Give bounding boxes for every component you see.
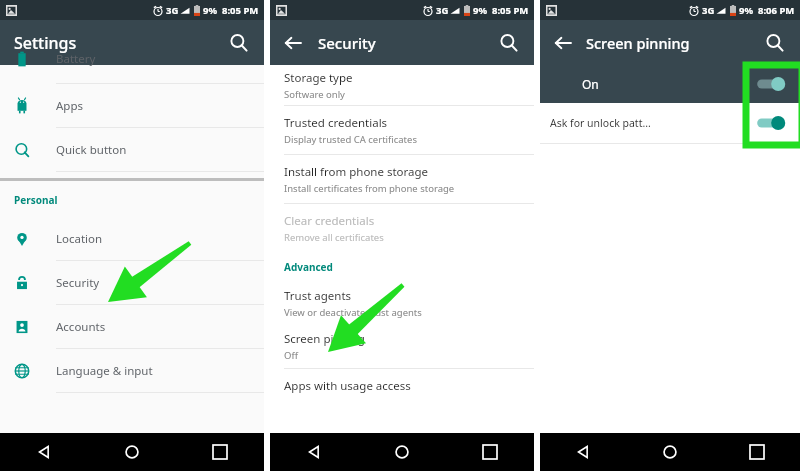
button[interactable]: Storage type xyxy=(270,65,534,106)
staticText: View or deactivate trust agents xyxy=(284,306,422,319)
staticText: Security xyxy=(56,275,100,291)
button[interactable]: Search xyxy=(494,28,524,58)
staticText: Advanced xyxy=(284,260,333,274)
staticText: 8:05 PM xyxy=(492,4,529,17)
button[interactable]: Language & input xyxy=(0,349,264,393)
staticText: Security xyxy=(318,33,376,53)
button[interactable]: Accounts xyxy=(0,305,264,349)
staticText: Location xyxy=(56,231,103,247)
button[interactable]: Search xyxy=(224,28,254,58)
staticText: 3G xyxy=(702,4,715,17)
staticText: Trust agents xyxy=(284,288,352,304)
button[interactable]: Clear credentials xyxy=(270,204,534,252)
staticText: Settings xyxy=(14,32,77,54)
staticText: On xyxy=(582,76,599,92)
staticText: Battery xyxy=(56,51,96,67)
staticText: Apps with usage access xyxy=(284,378,411,394)
staticText: Trusted credentials xyxy=(284,115,388,131)
staticText: Remove all certificates xyxy=(284,231,384,244)
staticText: Off xyxy=(284,349,298,362)
staticText: 3G xyxy=(166,4,179,17)
button[interactable]: Location xyxy=(0,217,264,261)
staticText: 9% xyxy=(203,4,218,17)
staticText: Apps xyxy=(56,98,84,114)
staticText: Clear credentials xyxy=(284,213,375,229)
button[interactable]: Screen pinning xyxy=(270,324,534,369)
button[interactable]: Home xyxy=(88,433,176,471)
button[interactable]: On xyxy=(582,65,786,103)
staticText: Install certificates from phone storage xyxy=(284,182,455,195)
staticText: 8:05 PM xyxy=(222,4,259,17)
button[interactable]: Back xyxy=(0,433,88,471)
button[interactable]: Recent apps xyxy=(176,433,264,471)
button[interactable]: Back xyxy=(270,433,358,471)
staticText: 9% xyxy=(739,4,754,17)
staticText: 3G xyxy=(436,4,449,17)
button[interactable]: Ask for unlock pattern before unpin.. xyxy=(550,103,786,143)
staticText: Personal xyxy=(14,193,58,207)
button[interactable]: Recent apps xyxy=(713,433,800,471)
button[interactable]: Apps xyxy=(0,84,264,128)
button[interactable] xyxy=(756,115,786,131)
button[interactable]: Quick button xyxy=(0,128,264,172)
button[interactable]: Navigate up xyxy=(548,28,578,58)
staticText: Quick button xyxy=(56,142,127,158)
staticText: Install from phone storage xyxy=(284,164,429,180)
button[interactable]: Navigate up xyxy=(278,28,308,58)
staticText: Ask for unlock pattern before unpin.. xyxy=(550,116,653,130)
button[interactable]: Apps with usage access xyxy=(270,369,534,403)
button[interactable]: Security xyxy=(0,261,264,305)
button[interactable] xyxy=(756,76,786,92)
button[interactable]: Back xyxy=(540,433,626,471)
button[interactable]: Trust agents xyxy=(270,282,534,324)
button[interactable]: Recent apps xyxy=(446,433,534,471)
staticText: 8:06 PM xyxy=(758,4,795,17)
button[interactable]: Home xyxy=(358,433,446,471)
staticText: Accounts xyxy=(56,319,106,335)
button[interactable]: Install from phone storage xyxy=(270,155,534,204)
button[interactable]: Home xyxy=(626,433,713,471)
staticText: Screen pinning xyxy=(284,331,365,347)
staticText: Screen pinning xyxy=(586,33,690,53)
staticText: 9% xyxy=(473,4,488,17)
staticText: Language & input xyxy=(56,363,153,379)
staticText: Software only xyxy=(284,88,345,101)
staticText: Storage type xyxy=(284,70,353,86)
button[interactable]: Battery xyxy=(0,65,264,83)
staticText: Display trusted CA certificates xyxy=(284,133,417,146)
button[interactable]: Trusted credentials xyxy=(270,106,534,155)
button[interactable]: Search xyxy=(760,28,790,58)
